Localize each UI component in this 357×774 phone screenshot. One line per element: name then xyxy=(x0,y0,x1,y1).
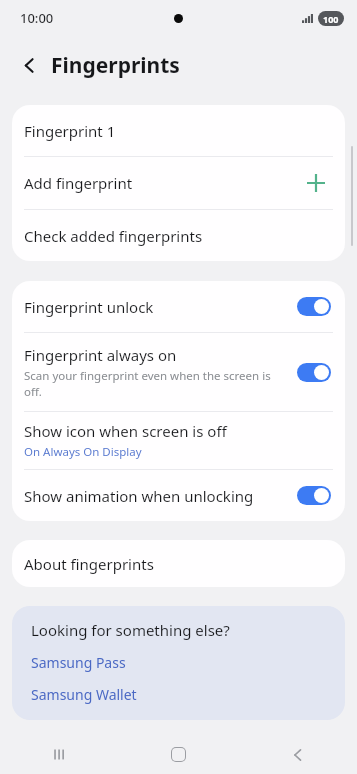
staticText: Show animation when unlocking xyxy=(24,486,297,506)
staticText: Add fingerprint xyxy=(24,173,304,193)
button[interactable]: Show animation when unlocking xyxy=(12,470,345,521)
button[interactable]: Samsung Pass xyxy=(12,646,345,678)
button[interactable]: Recent apps xyxy=(0,735,119,774)
staticText: On Always On Display xyxy=(24,444,142,460)
staticText: 10:00 xyxy=(20,9,54,27)
button[interactable]: Add fingerprint xyxy=(12,157,345,209)
staticText: Scan your fingerprint even when the scre… xyxy=(24,368,271,399)
button[interactable]: Back xyxy=(238,735,357,774)
staticText: Looking for something else? xyxy=(31,620,230,640)
staticText: Samsung Pass xyxy=(31,653,126,672)
button[interactable]: Show icon when screen is off xyxy=(12,412,345,469)
staticText: Fingerprint 1 xyxy=(24,121,116,141)
staticText: Show icon when screen is off xyxy=(24,421,227,441)
button[interactable]: Samsung Wallet xyxy=(12,678,345,710)
button[interactable]: Toggle xyxy=(297,363,331,382)
button[interactable]: Toggle xyxy=(297,486,331,505)
staticText: Fingerprints xyxy=(51,51,180,80)
staticText: 100 xyxy=(323,13,339,25)
staticText: Fingerprint unlock xyxy=(24,297,297,317)
button[interactable]: Check added fingerprints xyxy=(12,210,345,261)
button[interactable]: Fingerprint unlock xyxy=(12,281,345,332)
staticText: Check added fingerprints xyxy=(24,226,203,246)
button[interactable]: Fingerprint 1 xyxy=(12,105,345,156)
staticText: Fingerprint always on xyxy=(24,345,177,365)
button[interactable]: Home xyxy=(119,735,238,774)
button[interactable]: About fingerprints xyxy=(12,540,345,587)
staticText: Samsung Wallet xyxy=(31,685,137,704)
staticText: About fingerprints xyxy=(24,554,154,574)
button[interactable]: Toggle xyxy=(297,297,331,316)
button[interactable]: Back xyxy=(11,47,47,83)
button[interactable]: Fingerprint always on xyxy=(12,333,345,411)
